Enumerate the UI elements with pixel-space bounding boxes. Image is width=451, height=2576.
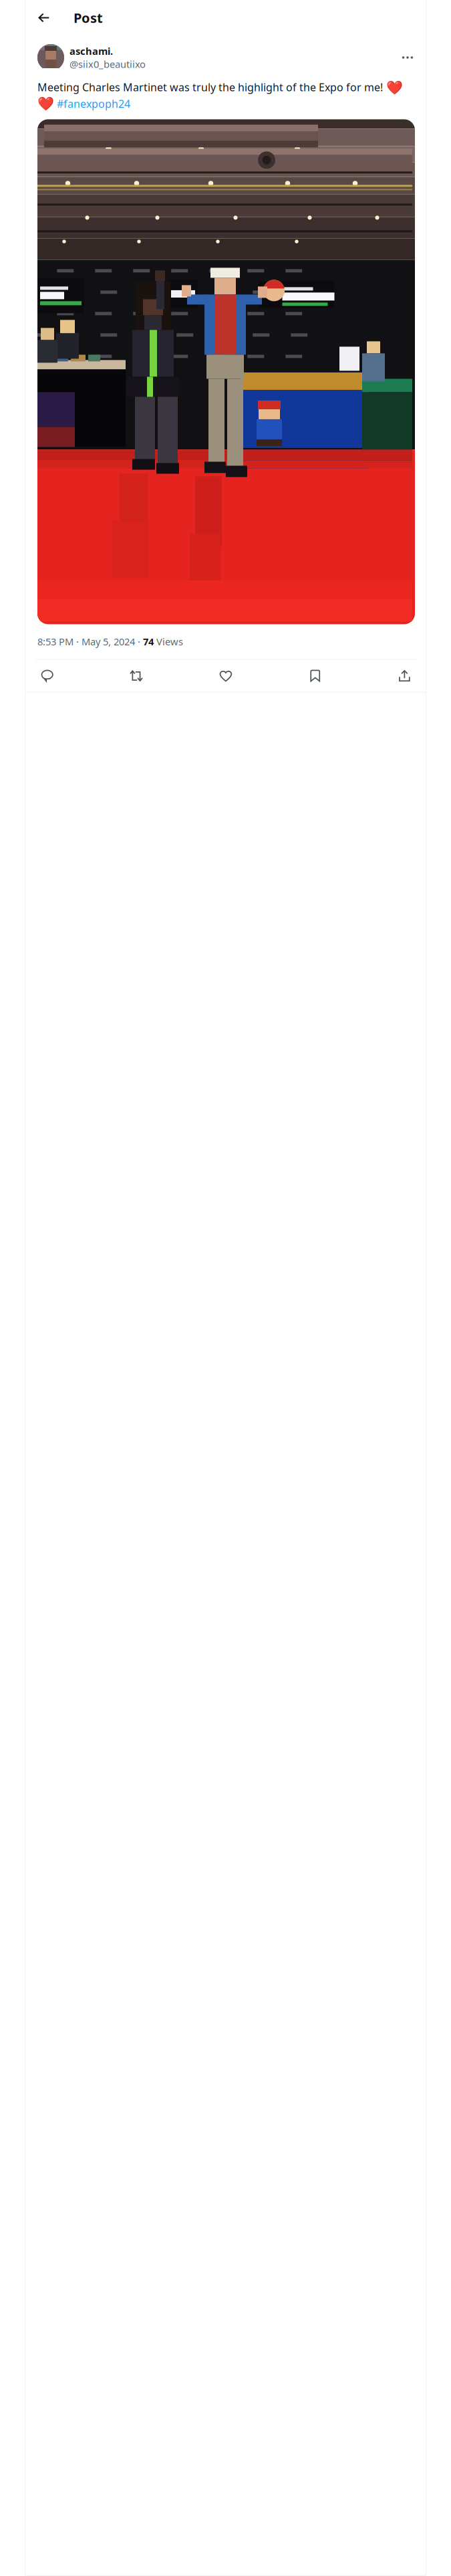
button[interactable]: Like (216, 660, 236, 691)
staticText: Views (154, 635, 183, 648)
staticText: #fanexpoph24 (54, 97, 130, 111)
staticText: 74 (143, 635, 154, 648)
staticText: @siix0_beautiixo (69, 58, 146, 71)
button[interactable]: #fanexpoph24 (54, 97, 130, 111)
button[interactable]: Repost (127, 660, 146, 691)
staticText: Post (73, 9, 103, 27)
button[interactable]: Profile picture (37, 44, 64, 71)
staticText: ❤️ (383, 78, 403, 96)
button[interactable]: Back (25, 0, 56, 35)
button[interactable]: aschami. (69, 44, 146, 71)
staticText: Meeting Charles Martinet was truly the h… (37, 80, 383, 94)
staticText: aschami. (69, 44, 113, 58)
button[interactable]: Share (395, 660, 414, 691)
button[interactable]: Photo (37, 119, 415, 624)
staticText: ❤️ (37, 96, 54, 111)
button[interactable]: Post (73, 0, 103, 35)
button[interactable]: More (400, 44, 415, 71)
staticText: 8:53 PM · May 5, 2024 · (37, 635, 143, 648)
button[interactable]: Reply (37, 660, 57, 691)
button[interactable]: Bookmark (305, 660, 325, 691)
